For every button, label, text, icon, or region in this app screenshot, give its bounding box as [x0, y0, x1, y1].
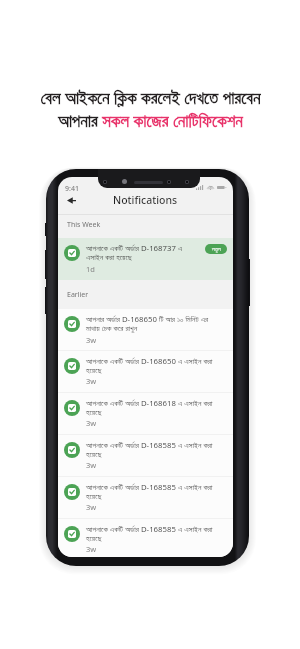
staticText: 3w [86, 502, 97, 512]
staticText: আপনাকে একটি অর্ডার D-168585 এ এসাইন করা … [86, 440, 213, 458]
staticText: Notifications [113, 193, 178, 207]
staticText: আপনাকে একটি অর্ডার D-168585 এ এসাইন করা … [86, 482, 213, 500]
staticText: 3w [86, 544, 97, 554]
button[interactable]: আপনাকে একটি অর্ডার D-168585 এ এসাইন করা … [58, 477, 233, 519]
staticText: আপনার অর্ডার D-168650 টি আর ১০ মিনিট এর … [86, 314, 209, 333]
button[interactable]: আপনাকে একটি অর্ডার D-168585 এ এসাইন করা … [58, 435, 233, 477]
staticText: আপনার সকল কাজের নোটিফিকেশন [58, 109, 243, 132]
staticText: আপনাকে একটি অর্ডার D-168650 এ এসাইন করা … [86, 356, 213, 374]
staticText: Earlier [67, 290, 89, 300]
staticText: আপনাকে একটি অর্ডার D-168737 এ এসাইন করা … [86, 243, 183, 262]
staticText: This Week [67, 220, 101, 230]
staticText: 3w [86, 335, 97, 345]
staticText: বেল আইকনে ক্লিক করলেই দেখতে পারবেন [40, 86, 261, 109]
button[interactable]: আপনাকে একটি অর্ডার D-168618 এ এসাইন করা … [58, 393, 233, 435]
staticText: 9:41 [65, 184, 79, 194]
staticText: নতুন [212, 246, 221, 252]
button[interactable]: আপনাকে একটি অর্ডার D-168737 এ এসাইন করা … [58, 238, 233, 280]
staticText: 3w [86, 376, 97, 386]
staticText: 3w [86, 418, 97, 428]
staticText: আপনাকে একটি অর্ডার D-168585 এ এসাইন করা … [86, 524, 213, 542]
button[interactable]: আপনাকে একটি অর্ডার D-168650 এ এসাইন করা … [58, 351, 233, 393]
button[interactable]: আপনার অর্ডার D-168650 টি আর ১০ মিনিট এর … [58, 309, 233, 351]
staticText: 1d [86, 264, 95, 274]
button[interactable]: Back [63, 192, 79, 208]
staticText: 3w [86, 460, 97, 470]
button[interactable]: আপনাকে একটি অর্ডার D-168585 এ এসাইন করা … [58, 519, 233, 557]
staticText: আপনাকে একটি অর্ডার D-168618 এ এসাইন করা … [86, 398, 213, 416]
